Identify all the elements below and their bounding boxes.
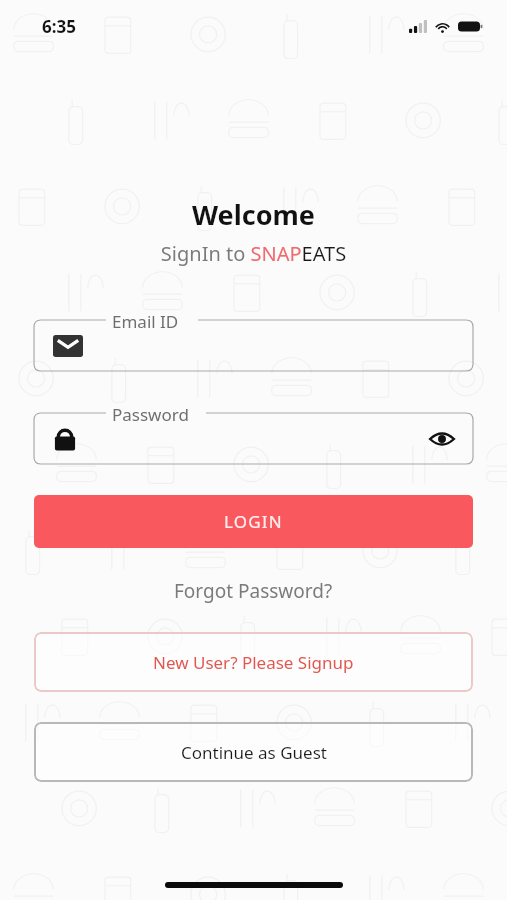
staticText: Forgot Password? [174,578,333,604]
staticText: Welcome [0,196,507,233]
staticText: 6:35 [42,15,76,38]
staticText: LOGIN [224,510,283,533]
button[interactable]: Continue as Guest [34,722,473,782]
button[interactable]: New User? Please Signup [34,632,473,692]
button[interactable]: Email ID [34,311,473,371]
staticText: SignIn to SNAPEATS [0,240,507,267]
button[interactable]: LOGIN [34,495,473,548]
staticText: Email ID [112,310,179,333]
staticText: Continue as Guest [181,741,327,764]
button[interactable]: Password [34,404,473,464]
staticText: Password [112,403,189,426]
other: Show password [429,430,455,448]
button[interactable]: Forgot Password? [0,574,507,608]
staticText: New User? Please Signup [153,651,354,674]
